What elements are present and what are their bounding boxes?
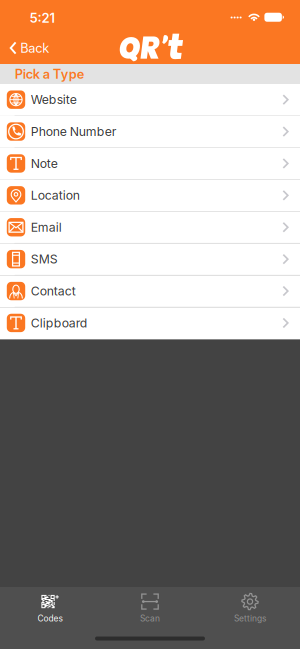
staticText: Pick a Type [15,66,85,82]
button[interactable]: Settings [200,586,300,629]
button[interactable]: Scan [100,586,200,629]
button[interactable]: Note [0,148,300,180]
staticText: 5:21 [29,10,55,26]
staticText: Email [31,220,62,235]
button[interactable]: SMS [0,243,300,275]
button[interactable]: Website [0,84,300,116]
staticText: Settings [234,613,266,624]
staticText: Phone Number [31,124,117,139]
staticText: Location [31,188,80,203]
button[interactable]: Phone Number [0,116,300,148]
staticText: Website [31,92,77,107]
button[interactable]: Codes [0,586,100,629]
button[interactable]: Email [0,212,300,243]
button[interactable]: Contact [0,275,300,307]
staticText: Contact [31,284,76,298]
button[interactable]: Location [0,180,300,212]
staticText: Scan [140,613,160,624]
staticText: Clipboard [31,315,88,330]
staticText: Back [20,40,49,56]
staticText: SMS [31,252,58,266]
button[interactable]: Back [0,31,59,59]
button[interactable]: Clipboard [0,307,300,339]
staticText: Codes [37,613,62,624]
staticText: Note [31,156,58,171]
